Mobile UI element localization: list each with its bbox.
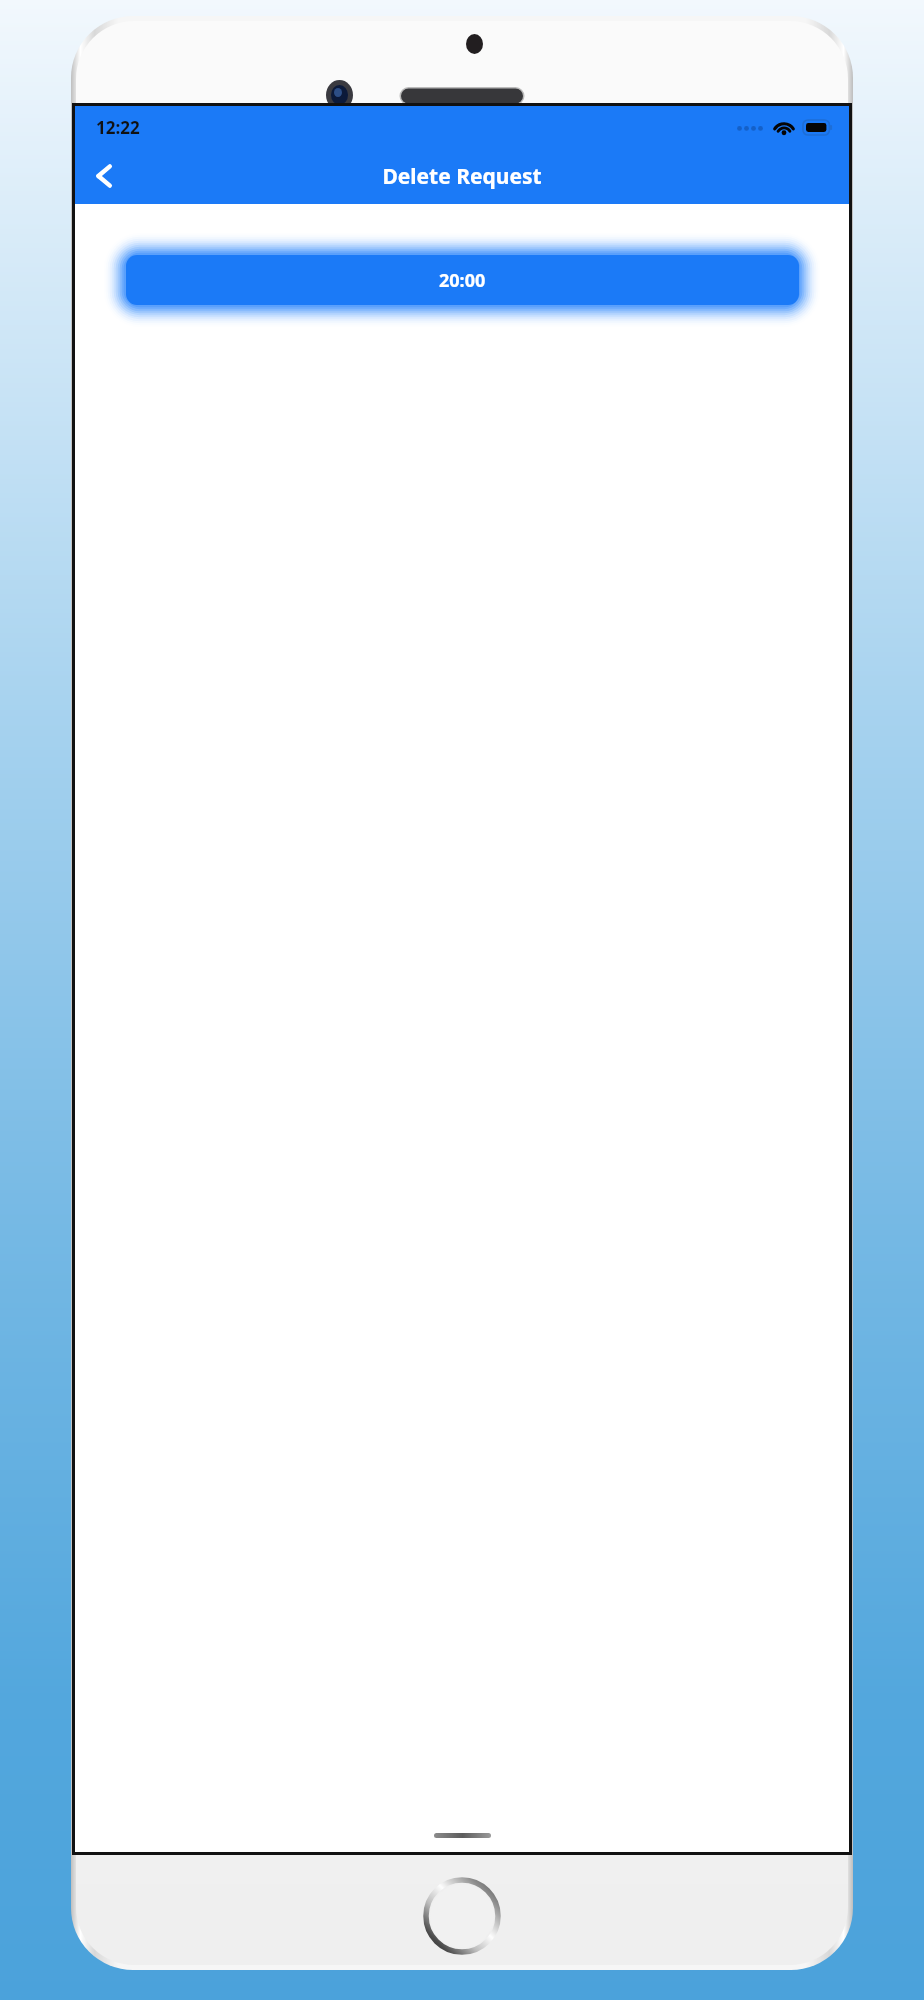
staticText: 12:22 [96, 116, 140, 139]
button[interactable]: 20:00 [126, 255, 799, 305]
staticText: Delete Request [75, 162, 849, 191]
button[interactable]: Home [420, 1874, 504, 1958]
button[interactable]: Back [82, 153, 128, 199]
staticText: 20:00 [439, 268, 486, 293]
